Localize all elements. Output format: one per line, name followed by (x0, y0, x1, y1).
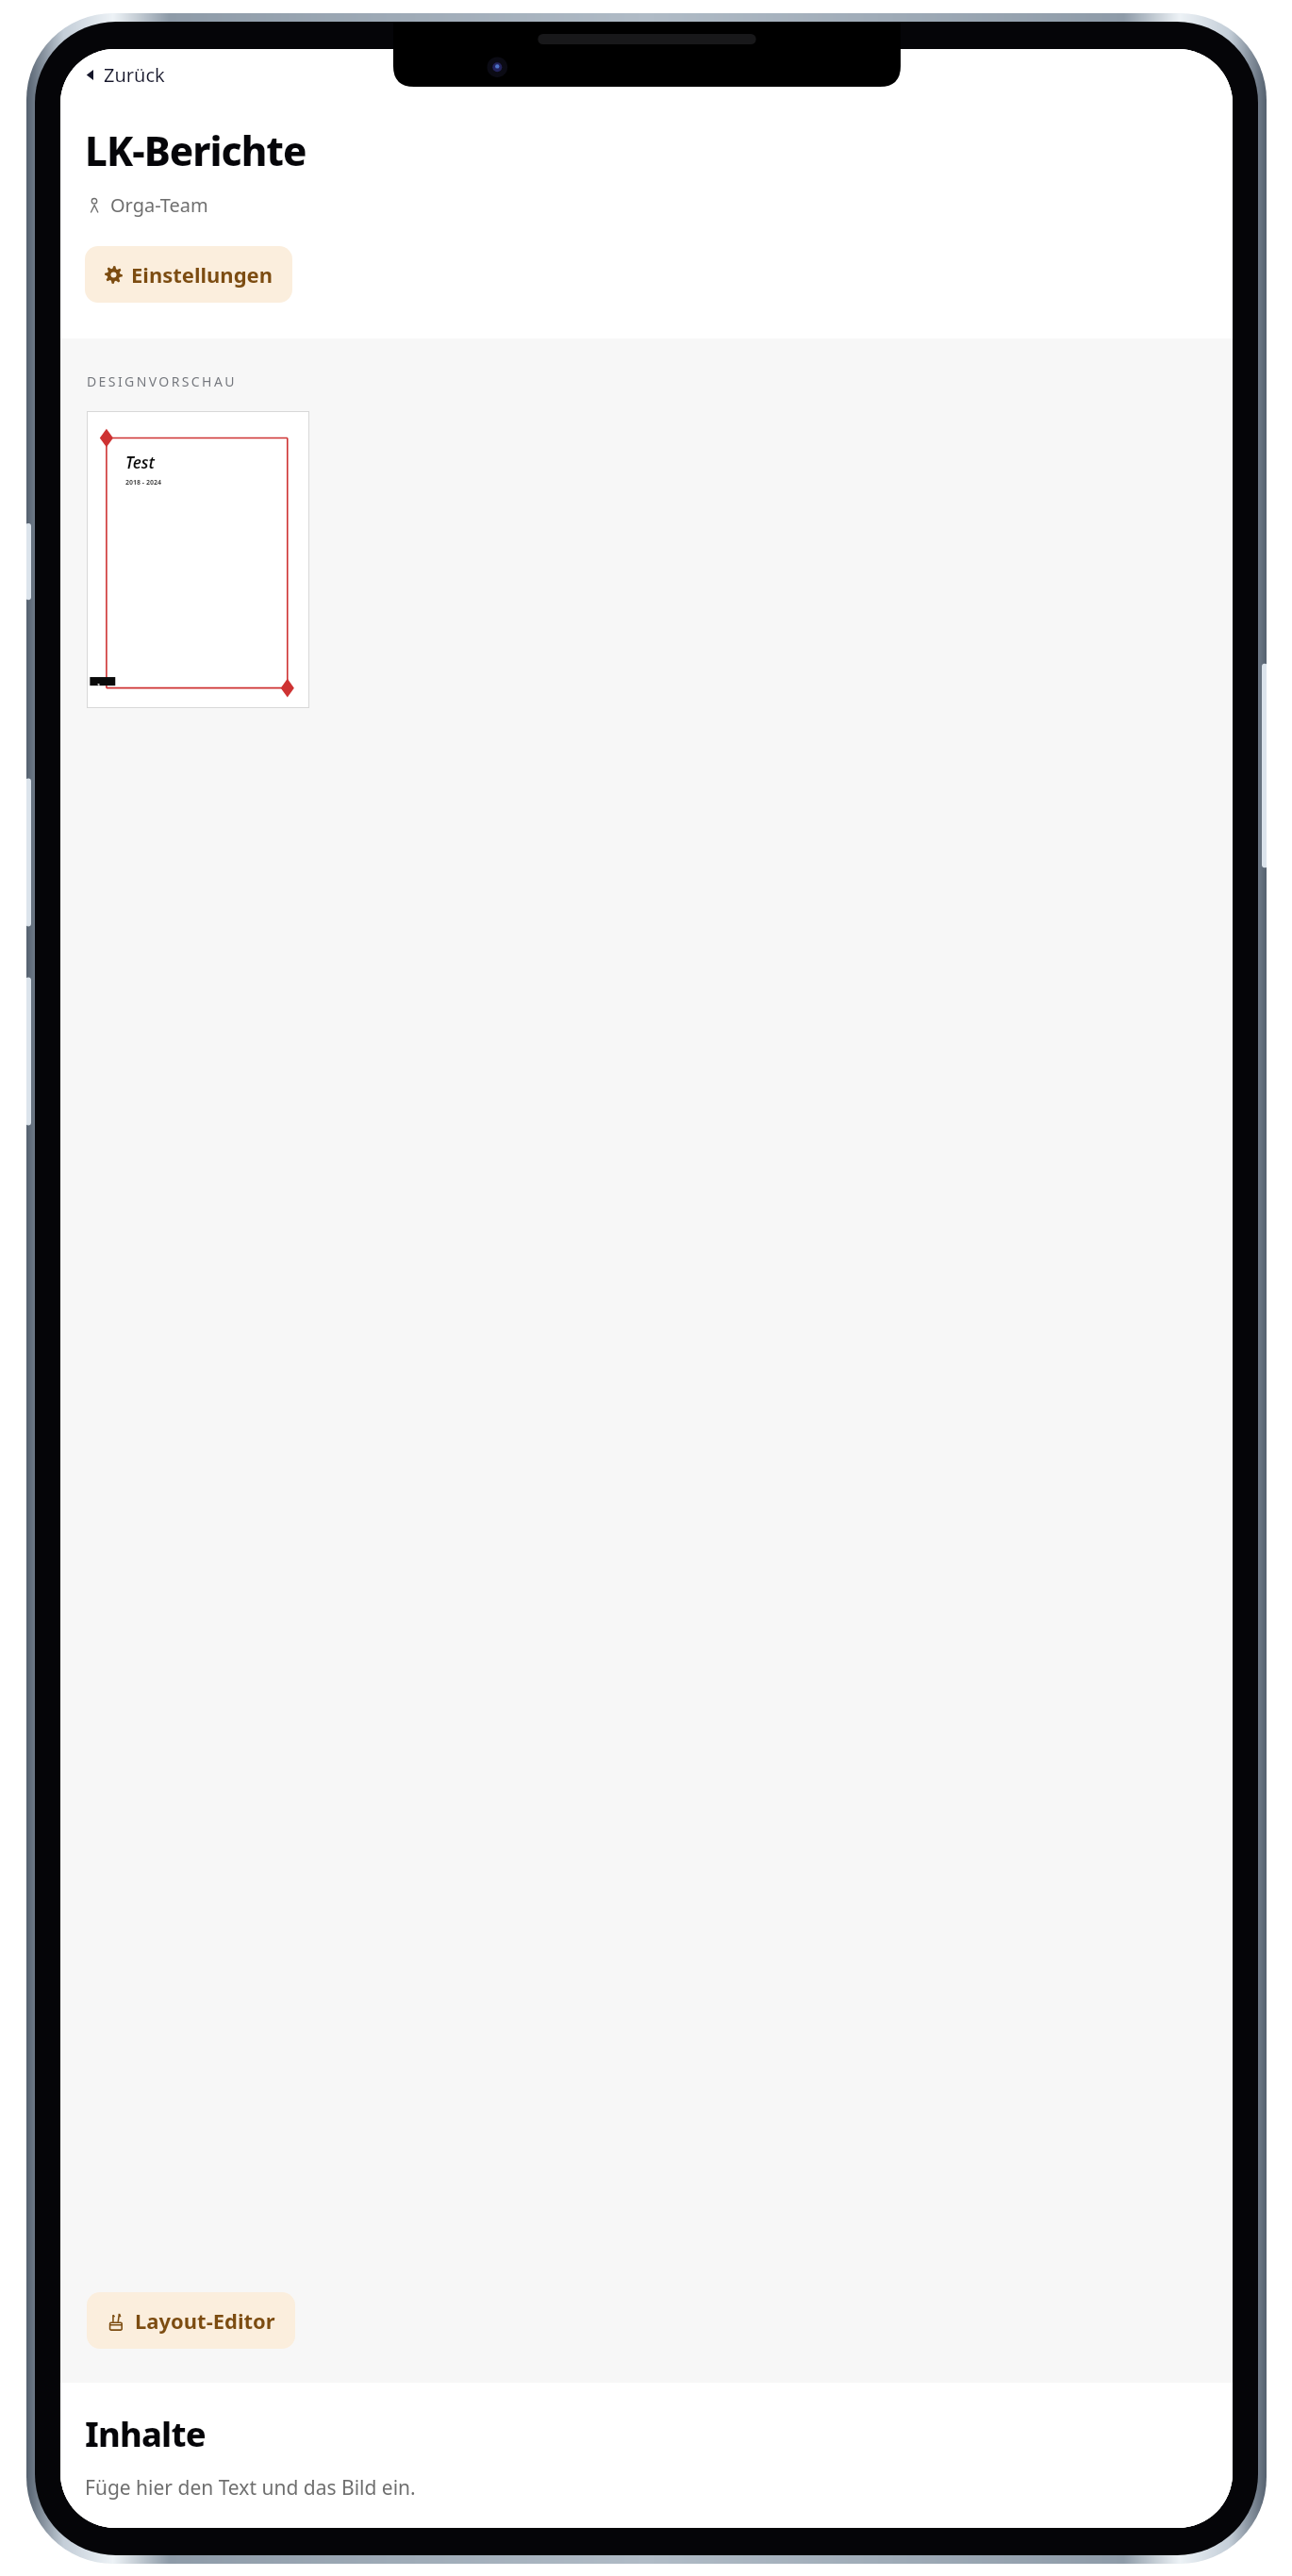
button[interactable]: Test (88, 412, 308, 707)
staticText: Layout-Editor (135, 2306, 275, 2335)
staticText: Füge hier den Text und das Bild ein. (85, 2474, 416, 2502)
button[interactable]: Einstellungen (85, 246, 292, 303)
staticText: LK-Berichte (85, 124, 306, 177)
button[interactable]: Zurück (79, 55, 171, 95)
staticText: Inhalte (85, 2411, 206, 2457)
staticText: Orga-Team (110, 192, 208, 218)
staticText: DESIGNVORSCHAU (87, 372, 237, 390)
staticText: 1 (97, 682, 101, 689)
staticText: Test (125, 452, 156, 473)
staticText: Zurück (104, 62, 165, 88)
button[interactable]: Layout-Editor (87, 2292, 295, 2349)
staticText: 2018 - 2024 (125, 478, 161, 487)
staticText: Einstellungen (131, 260, 273, 289)
